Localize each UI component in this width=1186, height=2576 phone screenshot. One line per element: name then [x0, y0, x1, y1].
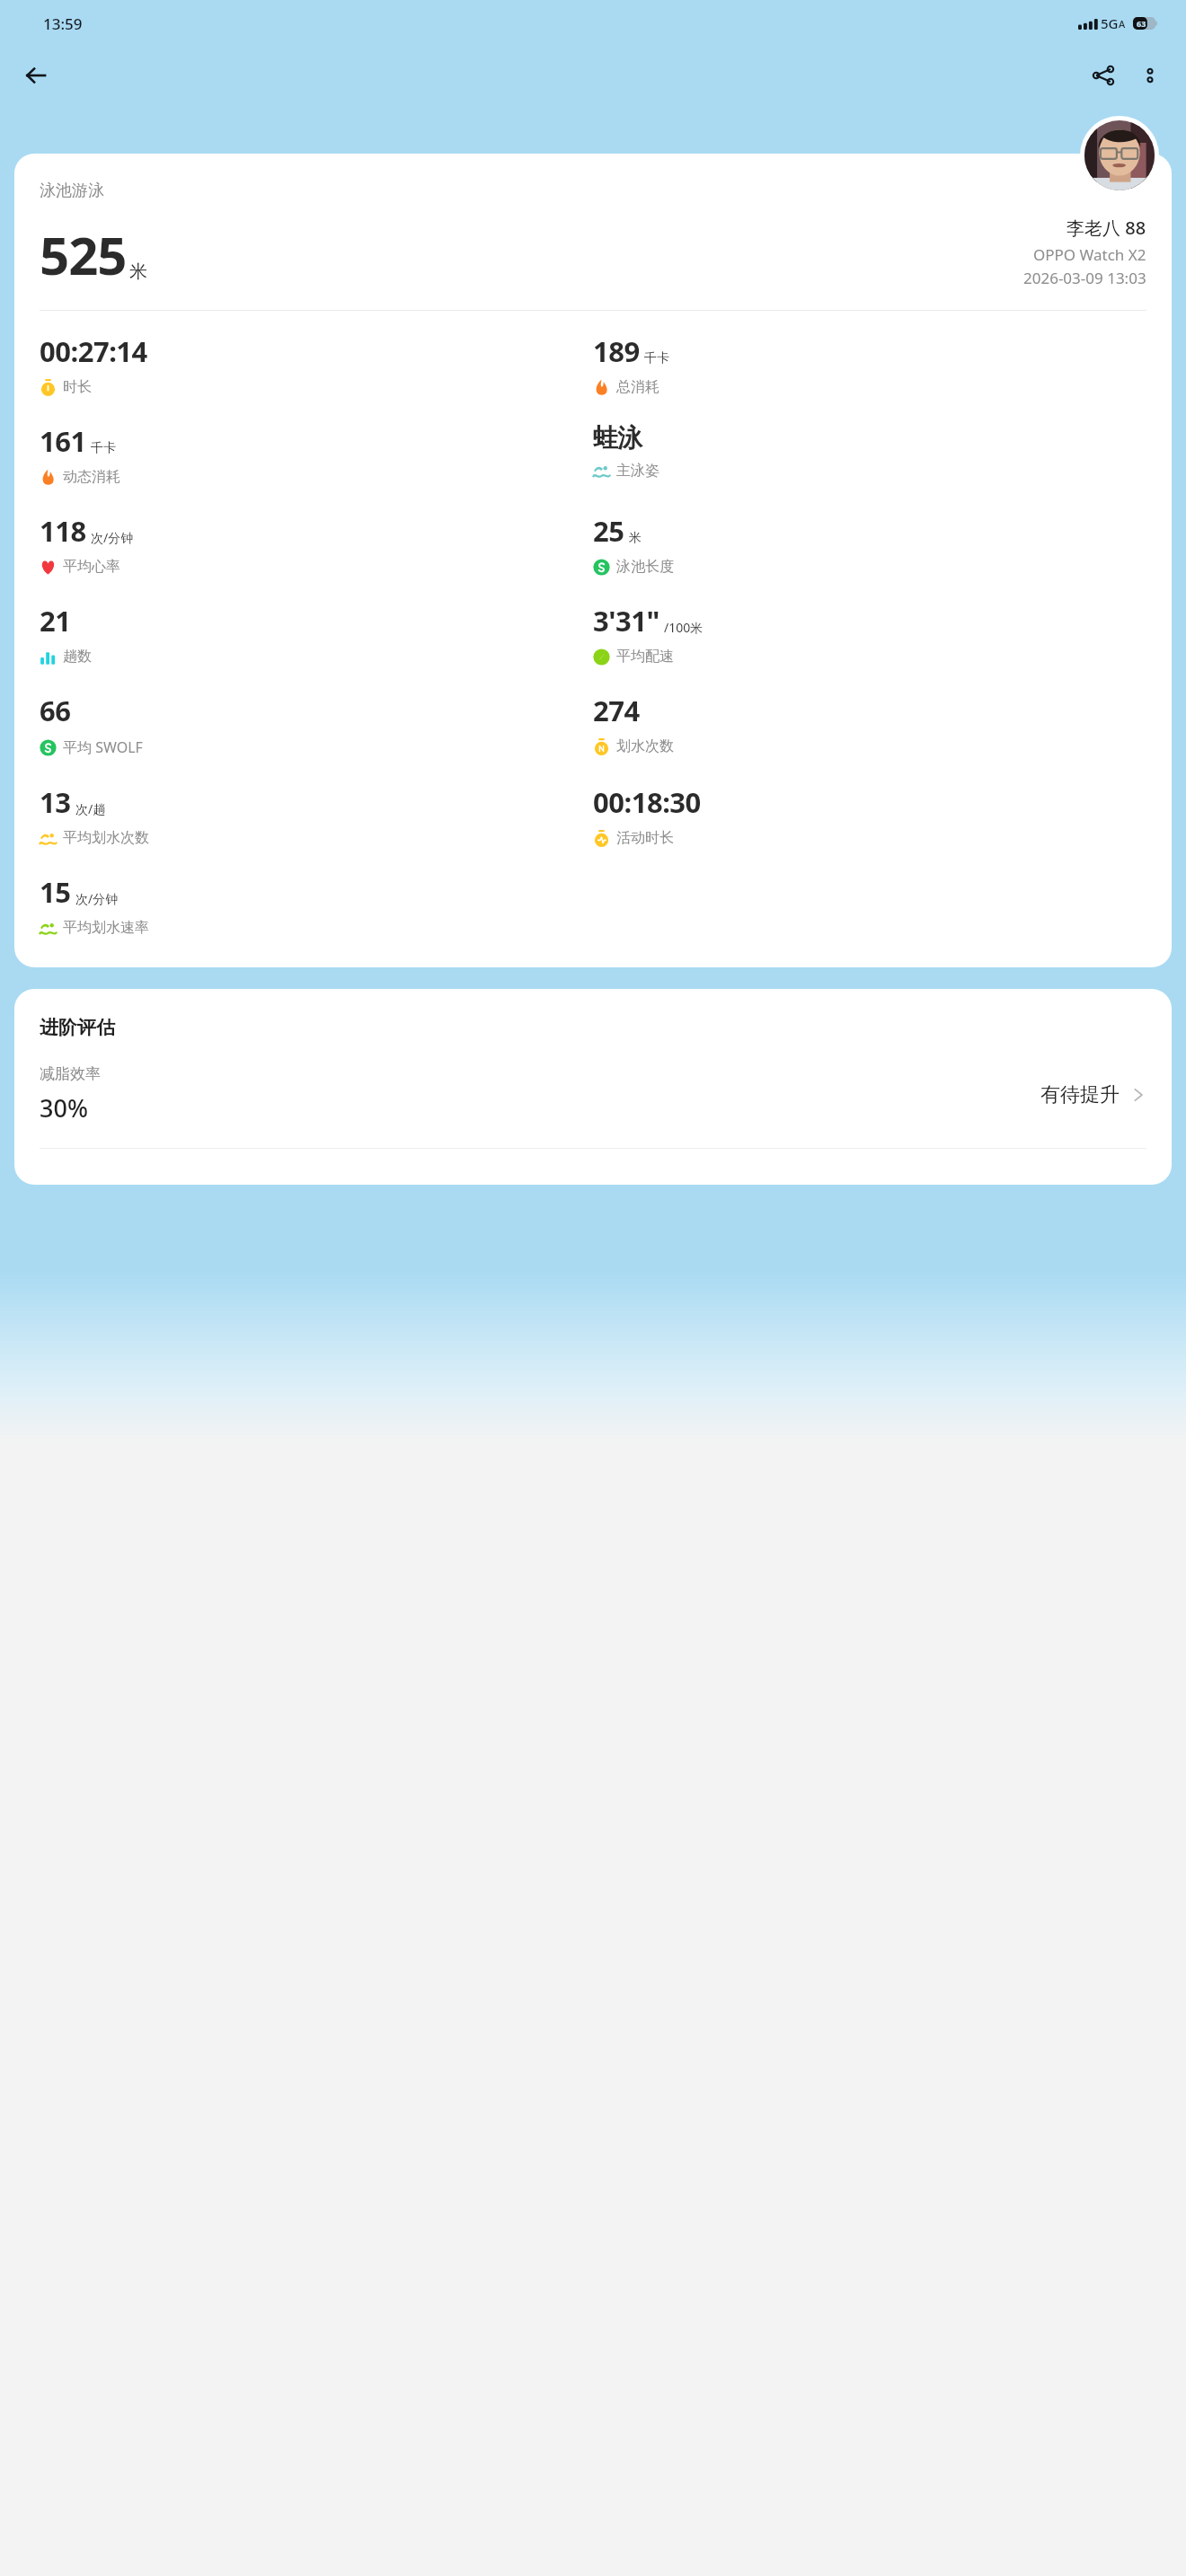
- staticText: 13: [40, 783, 71, 821]
- staticText: 21: [40, 602, 71, 640]
- staticText: 66: [40, 692, 71, 729]
- button[interactable]: Share: [1080, 52, 1127, 99]
- staticText: 米: [129, 260, 147, 283]
- staticText: 161: [40, 422, 86, 460]
- staticText: 274: [593, 692, 640, 729]
- staticText: 13:59: [43, 13, 83, 34]
- staticText: 减脂效率: [40, 1064, 101, 1083]
- button[interactable]: 274: [593, 692, 1146, 755]
- staticText: 李老八 88: [1067, 216, 1146, 240]
- staticText: 平均划水速率: [63, 919, 149, 937]
- staticText: 次/趟: [75, 800, 106, 817]
- button[interactable]: User avatar: [1084, 120, 1155, 190]
- button[interactable]: 13: [40, 783, 593, 847]
- staticText: 平均配速: [616, 648, 674, 666]
- staticText: 次/分钟: [91, 529, 134, 546]
- staticText: 泳池游泳: [40, 181, 104, 201]
- staticText: 平均划水次数: [63, 829, 149, 847]
- staticText: 趟数: [63, 648, 92, 666]
- staticText: 千卡: [644, 350, 669, 366]
- button[interactable]: 25: [593, 512, 1146, 576]
- staticText: 泳池长度: [616, 558, 674, 576]
- button[interactable]: 118: [40, 512, 593, 576]
- staticText: 5G: [1101, 14, 1119, 32]
- staticText: 25: [593, 512, 624, 550]
- staticText: 189: [593, 332, 640, 370]
- button[interactable]: 3'31": [593, 602, 1146, 666]
- button[interactable]: 189: [593, 332, 1146, 396]
- staticText: 活动时长: [616, 829, 674, 847]
- button[interactable]: 00:27:14: [40, 332, 593, 396]
- staticText: 15: [40, 873, 71, 911]
- staticText: 525: [40, 219, 127, 290]
- button[interactable]: More options: [1127, 52, 1173, 99]
- button[interactable]: 161: [40, 422, 593, 486]
- staticText: 动态消耗: [63, 468, 120, 486]
- button[interactable]: 21: [40, 602, 593, 666]
- staticText: 平均 SWOLF: [63, 737, 143, 757]
- staticText: OPPO Watch X2: [1033, 244, 1146, 265]
- staticText: 主泳姿: [616, 462, 659, 480]
- staticText: 进阶评估: [40, 1016, 115, 1039]
- staticText: /100米: [664, 619, 704, 636]
- button[interactable]: 66: [40, 692, 593, 757]
- staticText: 63: [1137, 18, 1146, 29]
- staticText: 30%: [40, 1091, 88, 1125]
- button[interactable]: 00:18:30: [593, 783, 1146, 847]
- staticText: 00:27:14: [40, 332, 147, 370]
- staticText: 2026-03-09 13:03: [1023, 268, 1146, 288]
- staticText: 118: [40, 512, 86, 550]
- staticText: 总消耗: [616, 378, 659, 396]
- staticText: 次/分钟: [75, 890, 119, 907]
- staticText: 划水次数: [616, 737, 674, 755]
- staticText: A: [1119, 17, 1126, 31]
- staticText: 蛙泳: [593, 422, 642, 454]
- staticText: 00:18:30: [593, 783, 701, 821]
- button[interactable]: Back: [13, 52, 59, 99]
- staticText: 3'31": [593, 602, 659, 640]
- staticText: 时长: [63, 378, 92, 396]
- button[interactable]: 15: [40, 873, 593, 937]
- staticText: 千卡: [91, 440, 116, 456]
- staticText: 有待提升: [1040, 1082, 1120, 1107]
- button[interactable]: 蛙泳: [593, 422, 1146, 480]
- staticText: 平均心率: [63, 558, 120, 576]
- button[interactable]: 减脂效率: [40, 1064, 1146, 1125]
- staticText: 米: [629, 530, 642, 546]
